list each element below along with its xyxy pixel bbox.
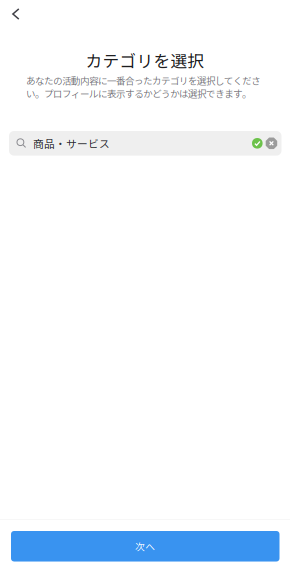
button[interactable]: 次へ <box>11 531 279 561</box>
staticText: 次へ <box>135 539 155 553</box>
button[interactable]: 検索 商品・サービス <box>9 131 281 156</box>
staticText: 商品・サービス <box>33 136 110 151</box>
button[interactable]: Back <box>0 0 34 28</box>
staticText: あなたの活動内容に一番合ったカテゴリを選択してください。プロフィールに表示するか… <box>26 74 260 100</box>
staticText: カテゴリを選択 <box>85 48 204 72</box>
